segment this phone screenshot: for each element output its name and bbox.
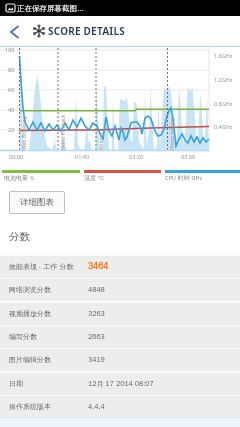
staticText: 01:40 xyxy=(75,153,90,160)
staticText: 温度 °C xyxy=(84,174,104,182)
staticText: 00:00 xyxy=(9,153,24,160)
button[interactable]: 效能表现 - 工作 分数 xyxy=(0,256,240,278)
staticText: 1.2GHz xyxy=(214,76,233,83)
staticText: 3419 xyxy=(88,355,105,364)
button[interactable]: 电池电量 % xyxy=(2,168,80,182)
button[interactable] xyxy=(4,22,26,42)
staticText: 0.4GHz xyxy=(214,123,233,130)
staticText: 4.4.4 xyxy=(88,402,105,411)
button[interactable]: 日期 xyxy=(0,373,240,395)
staticText: 100 xyxy=(5,46,15,53)
button[interactable]: CPU 时钟 GHz xyxy=(165,168,240,182)
button[interactable]: 详细图表 xyxy=(9,191,65,214)
staticText: 12月 17 2014 08:07 xyxy=(88,379,154,388)
staticText: 图片编辑分数 xyxy=(9,355,51,364)
staticText: 2663 xyxy=(88,332,105,341)
staticText: 电池电量 % xyxy=(4,174,34,182)
staticText: 操作系统版本 xyxy=(9,402,51,411)
staticText: 4848 xyxy=(88,285,105,294)
staticText: CPU 时钟 GHz xyxy=(165,174,202,182)
staticText: Photo editing xyxy=(169,118,176,150)
button[interactable]: 图片编辑分数 xyxy=(0,349,240,371)
staticText: 20 xyxy=(8,126,15,133)
staticText: Writing xyxy=(98,132,105,150)
staticText: 05:00 xyxy=(181,153,196,160)
staticText: 正在保存屏幕截图... xyxy=(17,4,84,13)
staticText: 分数 xyxy=(9,230,30,243)
button[interactable]: 操作系统版本 xyxy=(0,396,240,418)
staticText: 3263 xyxy=(88,309,105,318)
staticText: 03:20 xyxy=(129,153,144,160)
button[interactable]: 编写分数 xyxy=(0,326,240,348)
staticText: 视频播放分数 xyxy=(9,309,51,318)
staticText: 3464 xyxy=(88,261,109,272)
staticText: 40 xyxy=(8,106,15,113)
staticText: SCORE DETAILS xyxy=(48,24,125,38)
staticText: 60 xyxy=(8,86,15,93)
staticText: 编写分数 xyxy=(9,332,37,341)
staticText: 网络浏览分数 xyxy=(9,285,51,294)
staticText: 效能表现 - 工作 分数 xyxy=(9,262,74,271)
button[interactable]: 视频播放分数 xyxy=(0,303,240,325)
button[interactable]: 温度 °C xyxy=(84,168,161,182)
staticText: 80 xyxy=(8,66,15,73)
staticText: Web Browsing xyxy=(21,116,28,150)
staticText: 0.8GHz xyxy=(214,100,233,107)
staticText: 详细图表 xyxy=(20,197,54,208)
staticText: 1.6GHz xyxy=(214,52,233,59)
staticText: Video Playback xyxy=(60,114,67,150)
staticText: 日期 xyxy=(9,379,23,388)
button[interactable]: 网络浏览分数 xyxy=(0,279,240,301)
